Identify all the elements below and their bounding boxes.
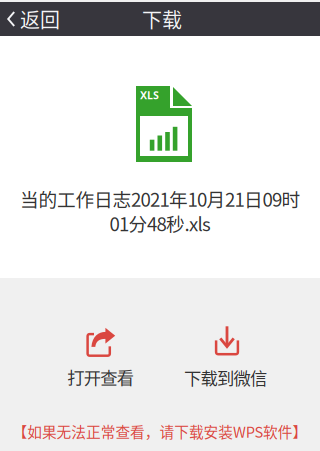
staticText: 下载 [142, 4, 182, 33]
staticText: 下载到微信 [184, 365, 267, 390]
staticText: 返回 [20, 4, 60, 33]
button[interactable]: 下载到微信 [163, 329, 288, 390]
button[interactable]: 返回 [0, 2, 70, 36]
button[interactable]: 打开查看 [38, 329, 163, 390]
staticText: 【如果无法正常查看，请下载安装WPS软件】 [12, 421, 307, 442]
staticText: XLS [140, 88, 159, 102]
staticText: 当的工作日志2021年10月21日09时01分48秒.xls [20, 185, 300, 237]
staticText: 打开查看 [67, 364, 134, 390]
